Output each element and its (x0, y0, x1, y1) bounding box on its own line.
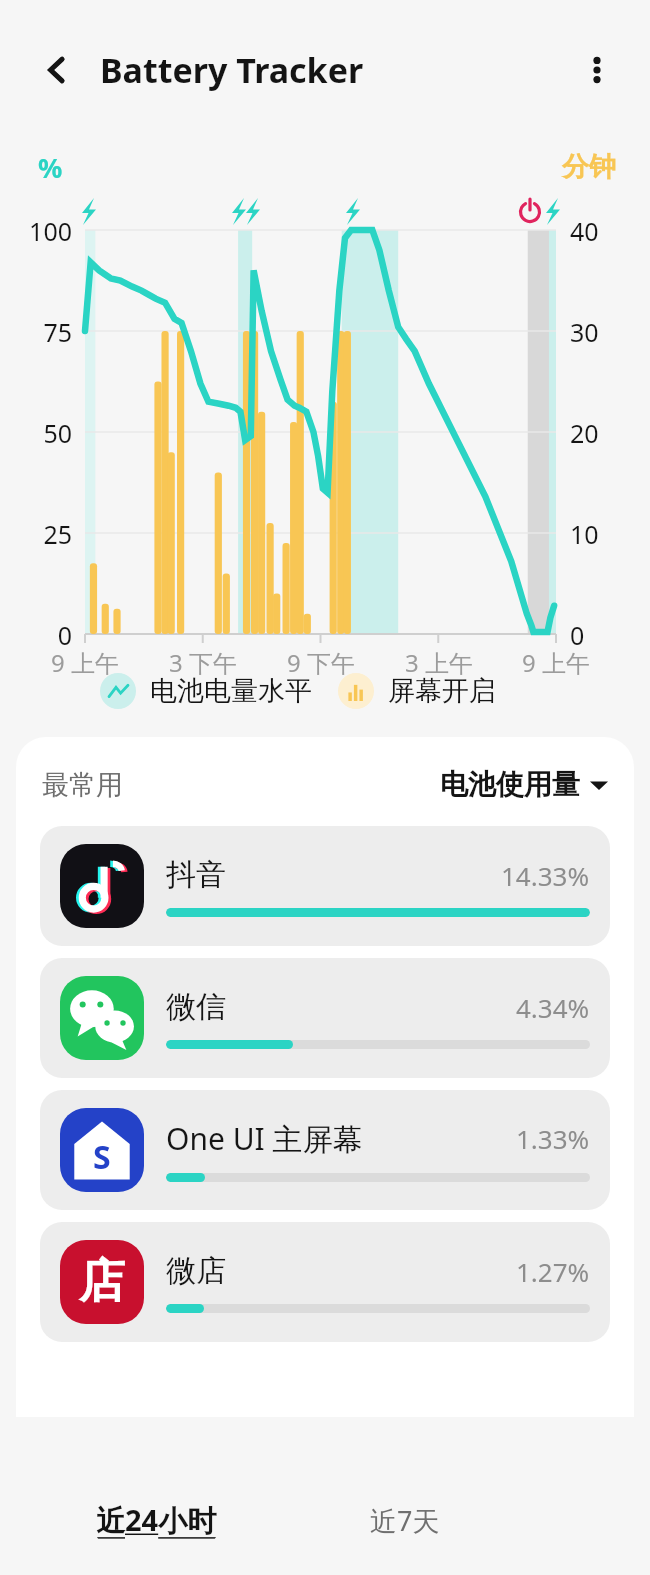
staticText: 近24小时 (96, 1500, 217, 1540)
staticText: 25 (0, 517, 72, 551)
staticText: 屏幕开启 (388, 674, 496, 708)
staticText: 50 (0, 416, 72, 450)
staticText: 100 (0, 214, 72, 248)
button[interactable]: S (40, 1090, 610, 1210)
staticText: 1.33% (516, 1121, 590, 1156)
staticText: 3 上午 (387, 646, 491, 679)
staticText: 分钟 (562, 150, 616, 184)
staticText: 9 上午 (504, 646, 608, 679)
staticText: 3 下午 (151, 646, 255, 679)
staticText: 9 上午 (33, 646, 137, 679)
staticText: One UI 主屏幕 (166, 1118, 363, 1159)
staticText: 14.33% (501, 858, 590, 893)
button[interactable]: 微信 (40, 958, 610, 1078)
staticText: % (38, 149, 63, 186)
staticText: 电池使用量 (440, 767, 580, 802)
staticText: Battery Tracker (100, 47, 364, 93)
staticText: 1.27% (516, 1254, 590, 1289)
staticText: 0 (570, 618, 630, 652)
staticText: 4.34% (516, 990, 590, 1025)
staticText: 40 (570, 214, 630, 248)
staticText: 10 (570, 517, 630, 551)
staticText: S (93, 1135, 111, 1179)
staticText: 30 (570, 315, 630, 349)
button[interactable]: 电池使用量 (440, 767, 608, 802)
button[interactable]: Back (28, 41, 86, 99)
button[interactable]: 近7天 (370, 1502, 440, 1539)
button[interactable]: 抖音 (40, 826, 610, 946)
staticText: 9 下午 (269, 646, 373, 679)
button[interactable]: 近24小时 (96, 1500, 217, 1540)
staticText: 微店 (166, 1252, 226, 1290)
staticText: 0 (0, 618, 72, 652)
button[interactable]: 店 (40, 1222, 610, 1342)
staticText: 20 (570, 416, 630, 450)
staticText: 抖音 (166, 856, 226, 894)
staticText: 近7天 (370, 1502, 440, 1539)
staticText: 微信 (166, 988, 226, 1026)
staticText: 75 (0, 315, 72, 349)
staticText: 店 (79, 1253, 125, 1311)
staticText: 电池电量水平 (150, 674, 312, 708)
staticText: 最常用 (42, 768, 123, 802)
button[interactable]: More options (568, 41, 626, 99)
